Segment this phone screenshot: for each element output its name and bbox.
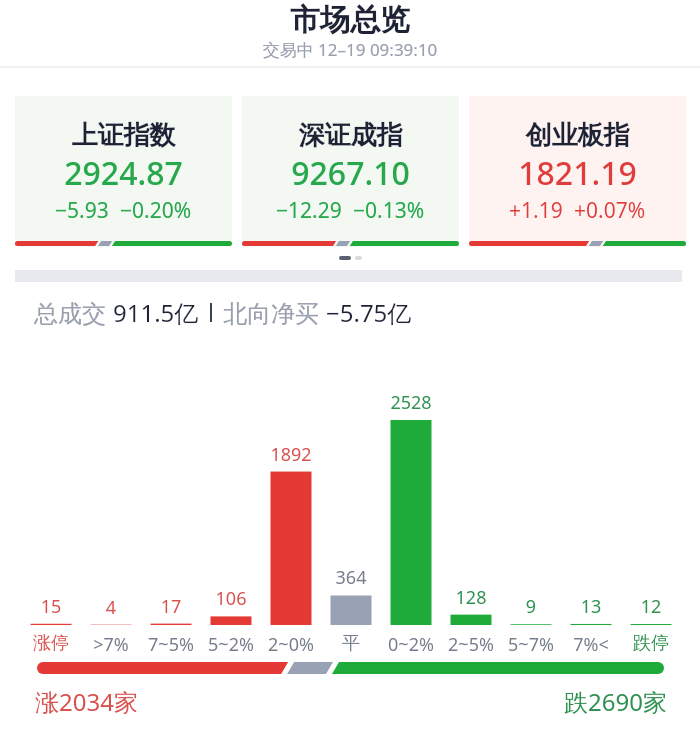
button[interactable]: 15 (21, 388, 81, 652)
button[interactable]: 4 (81, 388, 141, 652)
staticText: 106 (201, 586, 261, 611)
staticText: 2924.87 (15, 151, 232, 195)
staticText: 2~5% (441, 632, 501, 657)
button[interactable]: 1892 (261, 388, 321, 652)
staticText: 跌2690家 (0, 685, 667, 718)
staticText: −0.20% (120, 196, 192, 225)
staticText: 总成交 (34, 296, 113, 329)
staticText: 北向净买 (223, 296, 326, 329)
staticText: −0.13% (353, 196, 425, 225)
staticText: 7%< (561, 632, 621, 657)
staticText: 2528 (381, 390, 441, 415)
staticText: +1.19 (509, 196, 563, 225)
staticText: 364 (321, 565, 381, 590)
staticText: 1892 (261, 442, 321, 467)
staticText: 交易中 12–19 09:39:10 (0, 38, 700, 61)
staticText: 涨停 (21, 632, 81, 655)
button[interactable]: Page 2 of 2 (355, 256, 362, 260)
staticText: 平 (321, 632, 381, 655)
staticText: 创业板指 (469, 119, 686, 152)
staticText: 911.5亿 (113, 296, 199, 329)
staticText: 17 (141, 594, 201, 619)
button[interactable]: Page 1 of 2 (339, 256, 351, 260)
staticText: 深证成指 (242, 119, 459, 152)
button[interactable]: 9 (501, 388, 561, 652)
staticText: >7% (81, 632, 141, 657)
staticText: +0.07% (574, 196, 646, 225)
staticText: −12.29 (276, 196, 342, 225)
staticText: 12 (621, 594, 681, 619)
staticText: 1821.19 (469, 151, 686, 195)
button[interactable]: 128 (441, 388, 501, 652)
staticText: −5.93 (55, 196, 109, 225)
button[interactable]: 上证指数 (15, 96, 232, 247)
button[interactable]: 创业板指 (469, 96, 686, 247)
button[interactable]: 17 (141, 388, 201, 652)
button[interactable]: 2528 (381, 388, 441, 652)
staticText: −5.75亿 (326, 296, 412, 329)
button[interactable]: 13 (561, 388, 621, 652)
button[interactable]: 深证成指 (242, 96, 459, 247)
staticText: 上证指数 (15, 119, 232, 152)
staticText: 5~2% (201, 632, 261, 657)
button[interactable]: 106 (201, 388, 261, 652)
staticText: 0~2% (381, 632, 441, 657)
staticText: 2~0% (261, 632, 321, 657)
button[interactable]: 364 (321, 388, 381, 652)
staticText: 涨2034家 (35, 685, 138, 718)
staticText: 7~5% (141, 632, 201, 657)
staticText: 9 (501, 594, 561, 619)
staticText: 跌停 (621, 632, 681, 655)
button[interactable]: 总成交 (34, 296, 412, 329)
staticText: 9267.10 (242, 151, 459, 195)
staticText: 128 (441, 585, 501, 610)
staticText: 4 (81, 595, 141, 620)
staticText: 13 (561, 594, 621, 619)
staticText: 15 (21, 594, 81, 619)
button[interactable]: 12 (621, 388, 681, 652)
staticText: 市场总览 (0, 1, 700, 39)
staticText: 5~7% (501, 632, 561, 657)
